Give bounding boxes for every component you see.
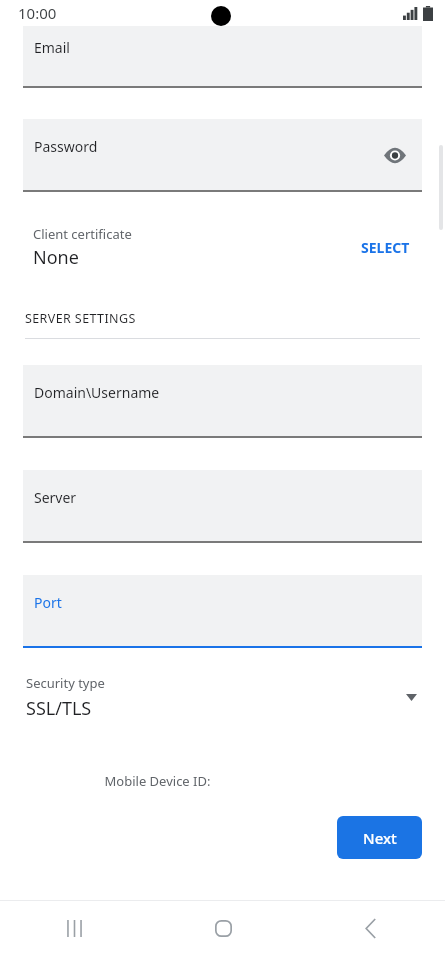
staticText: Server [34,488,77,507]
staticText: Mobile Device ID: [0,772,315,790]
button[interactable]: Domain\Username [23,365,422,438]
button[interactable]: Security type [0,674,445,721]
button[interactable]: Recent apps [0,901,149,956]
staticText: Security type [26,674,105,692]
staticText: Email [34,38,70,57]
staticText: None [33,245,79,270]
staticText: 10:00 [18,3,57,23]
button[interactable]: Server [23,470,422,543]
staticText: Port [34,593,62,612]
staticText: SERVER SETTINGS [25,310,136,327]
button[interactable]: Back [297,901,445,956]
button[interactable]: SELECT [359,232,412,263]
button[interactable]: Port [23,575,422,648]
staticText: Next [363,828,397,848]
button[interactable]: Password [23,119,422,192]
button[interactable]: Show password [378,138,412,172]
button[interactable]: Home [149,901,297,956]
staticText: Domain\Username [34,383,160,402]
button[interactable]: Next [337,816,422,859]
button[interactable]: Client certificate [0,225,445,270]
staticText: SSL/TLS [26,696,92,721]
button[interactable]: Email [23,26,422,88]
staticText: Password [34,137,98,156]
staticText: Client certificate [33,225,132,243]
